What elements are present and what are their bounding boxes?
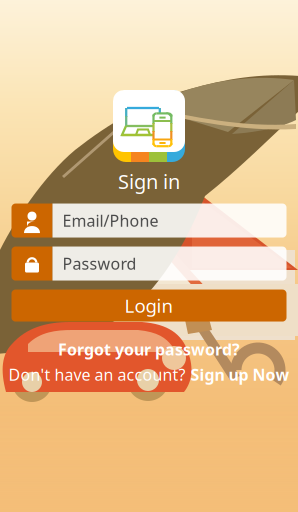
button[interactable]: Forgot your password? [58,339,240,360]
button[interactable]: Login [11,290,286,322]
staticText: Password [62,253,136,274]
staticText: Email/Phone [62,210,158,231]
staticText: Sign in [118,168,180,195]
staticText: Sign up Now [190,364,289,385]
button[interactable]: Sign up Now [190,364,289,385]
staticText: Don't have an account? [8,364,185,385]
staticText: Login [124,293,173,318]
button[interactable]: Email/Phone [11,204,286,238]
button[interactable]: Password [11,247,286,281]
staticText: Forgot your password? [58,339,240,360]
